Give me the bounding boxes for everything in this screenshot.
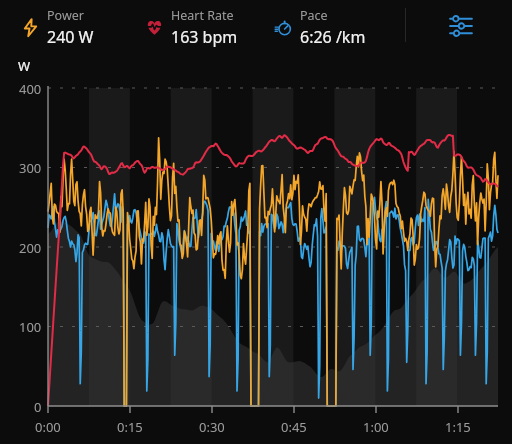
- staticText: Pace: [300, 7, 328, 24]
- staticText: 400: [19, 80, 42, 98]
- staticText: Power: [47, 7, 84, 24]
- staticText: 6:26 /km: [300, 26, 366, 48]
- staticText: 0: [34, 398, 42, 416]
- staticText: 1:00: [363, 418, 389, 436]
- staticText: 300: [19, 159, 42, 177]
- staticText: 0:30: [199, 418, 225, 436]
- button[interactable]: Pace: [274, 7, 366, 48]
- staticText: 0:15: [117, 418, 143, 436]
- staticText: 240 W: [47, 26, 94, 48]
- staticText: 100: [19, 318, 42, 336]
- staticText: 200: [19, 239, 42, 257]
- button[interactable]: Power: [21, 7, 94, 48]
- button[interactable]: Chart settings: [442, 7, 480, 45]
- staticText: 1:15: [445, 418, 471, 436]
- staticText: 163 bpm: [171, 26, 238, 48]
- staticText: 0:45: [281, 418, 307, 436]
- staticText: 0:00: [35, 418, 61, 436]
- button[interactable]: Heart Rate: [145, 7, 238, 48]
- staticText: Heart Rate: [171, 7, 234, 24]
- staticText: W: [18, 57, 31, 75]
